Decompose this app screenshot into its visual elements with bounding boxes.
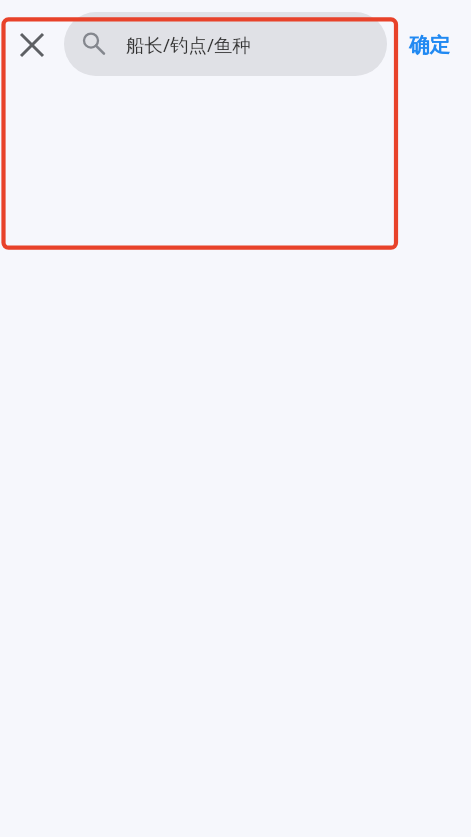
- button[interactable]: 确定: [393, 13, 465, 77]
- staticText: 确定: [409, 32, 450, 58]
- button[interactable]: 船长/钓点/鱼种: [64, 12, 387, 76]
- button[interactable]: Close: [9, 22, 54, 67]
- staticText: 船长/钓点/鱼种: [126, 32, 251, 57]
